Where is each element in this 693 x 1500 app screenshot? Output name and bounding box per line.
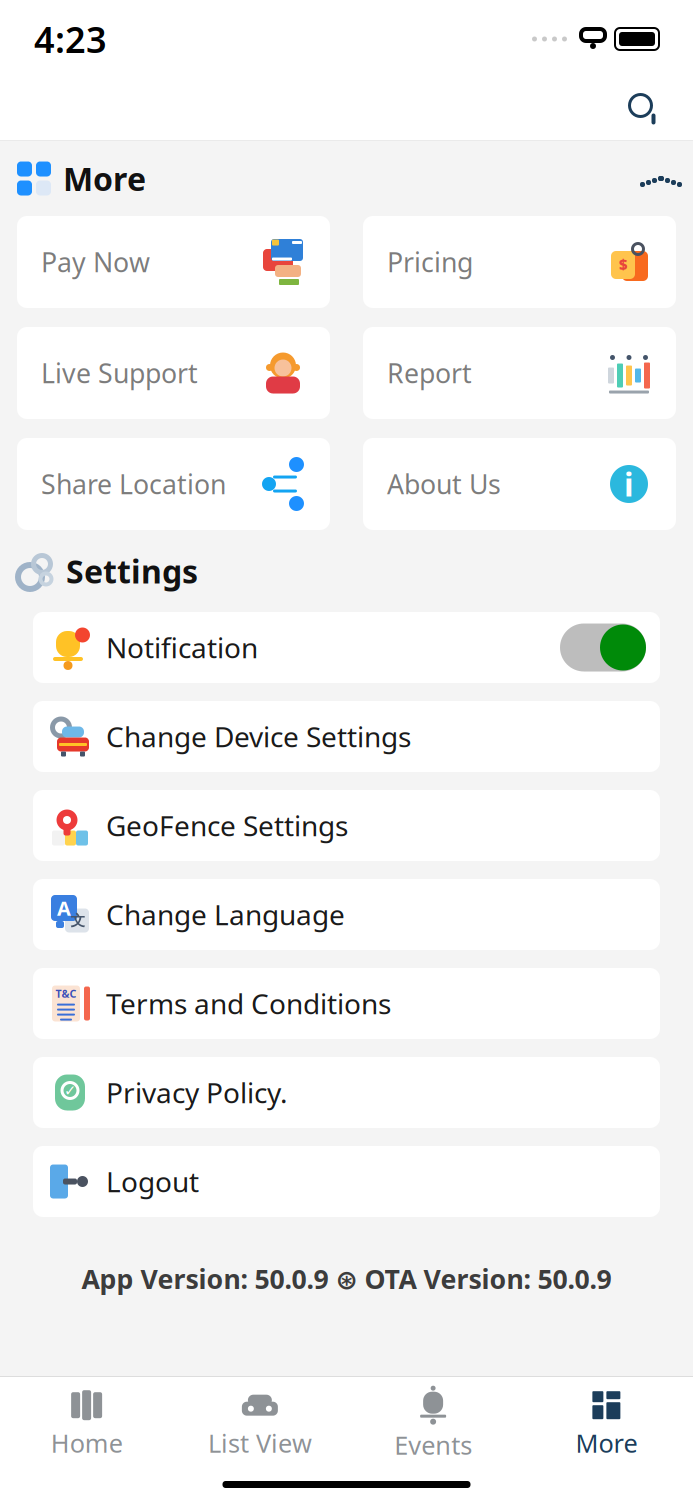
button[interactable]: Home [0, 1380, 173, 1466]
button[interactable]: Pricing [363, 216, 676, 308]
staticText: GeoFence Settings [106, 807, 348, 844]
staticText: List View [208, 1426, 312, 1460]
staticText: ✓ [64, 1082, 76, 1099]
button[interactable]: T&C [33, 968, 660, 1039]
button[interactable]: Events [346, 1378, 520, 1468]
staticText: Pay Now [41, 244, 150, 280]
button[interactable]: Notification [33, 612, 660, 683]
staticText: i [624, 463, 634, 505]
staticText: Logout [106, 1163, 199, 1200]
button[interactable]: Logout [33, 1146, 660, 1217]
staticText: More [63, 157, 146, 200]
button[interactable]: ✓ [33, 1057, 660, 1128]
button[interactable]: Share Location [17, 438, 330, 530]
staticText: Share Location [41, 466, 226, 502]
staticText: Notification [106, 629, 258, 666]
staticText: Home [51, 1426, 123, 1460]
staticText: App Version: 50.0.9 ⊛ OTA Version: 50.0.… [81, 1261, 611, 1296]
staticText: Live Support [41, 355, 198, 391]
staticText: Settings [66, 550, 198, 592]
staticText: Events [394, 1428, 472, 1462]
staticText: $ [619, 254, 627, 274]
button[interactable]: List View [173, 1380, 346, 1466]
staticText: Change Device Settings [106, 718, 411, 755]
staticText: More [575, 1426, 637, 1460]
staticText: Pricing [387, 244, 473, 280]
button[interactable]: Change Device Settings [33, 701, 660, 772]
button[interactable]: Report [363, 327, 676, 419]
button[interactable]: More [0, 141, 693, 216]
button[interactable]: About Us [363, 438, 676, 530]
staticText: Change Language [106, 896, 345, 933]
staticText: Report [387, 355, 472, 391]
button[interactable]: GeoFence Settings [33, 790, 660, 861]
staticText: T&C [55, 986, 76, 1001]
button[interactable]: Live Support [17, 327, 330, 419]
button[interactable]: A [33, 879, 660, 950]
staticText: Privacy Policy. [106, 1074, 288, 1111]
staticText: Terms and Conditions [106, 985, 391, 1022]
staticText: 4:23 [34, 15, 107, 63]
button[interactable]: Search [613, 82, 675, 136]
button[interactable]: Pay Now [17, 216, 330, 308]
staticText: About Us [387, 466, 501, 502]
button[interactable]: More [520, 1380, 693, 1466]
staticText: A [57, 895, 71, 921]
staticText: 文 [70, 911, 85, 929]
